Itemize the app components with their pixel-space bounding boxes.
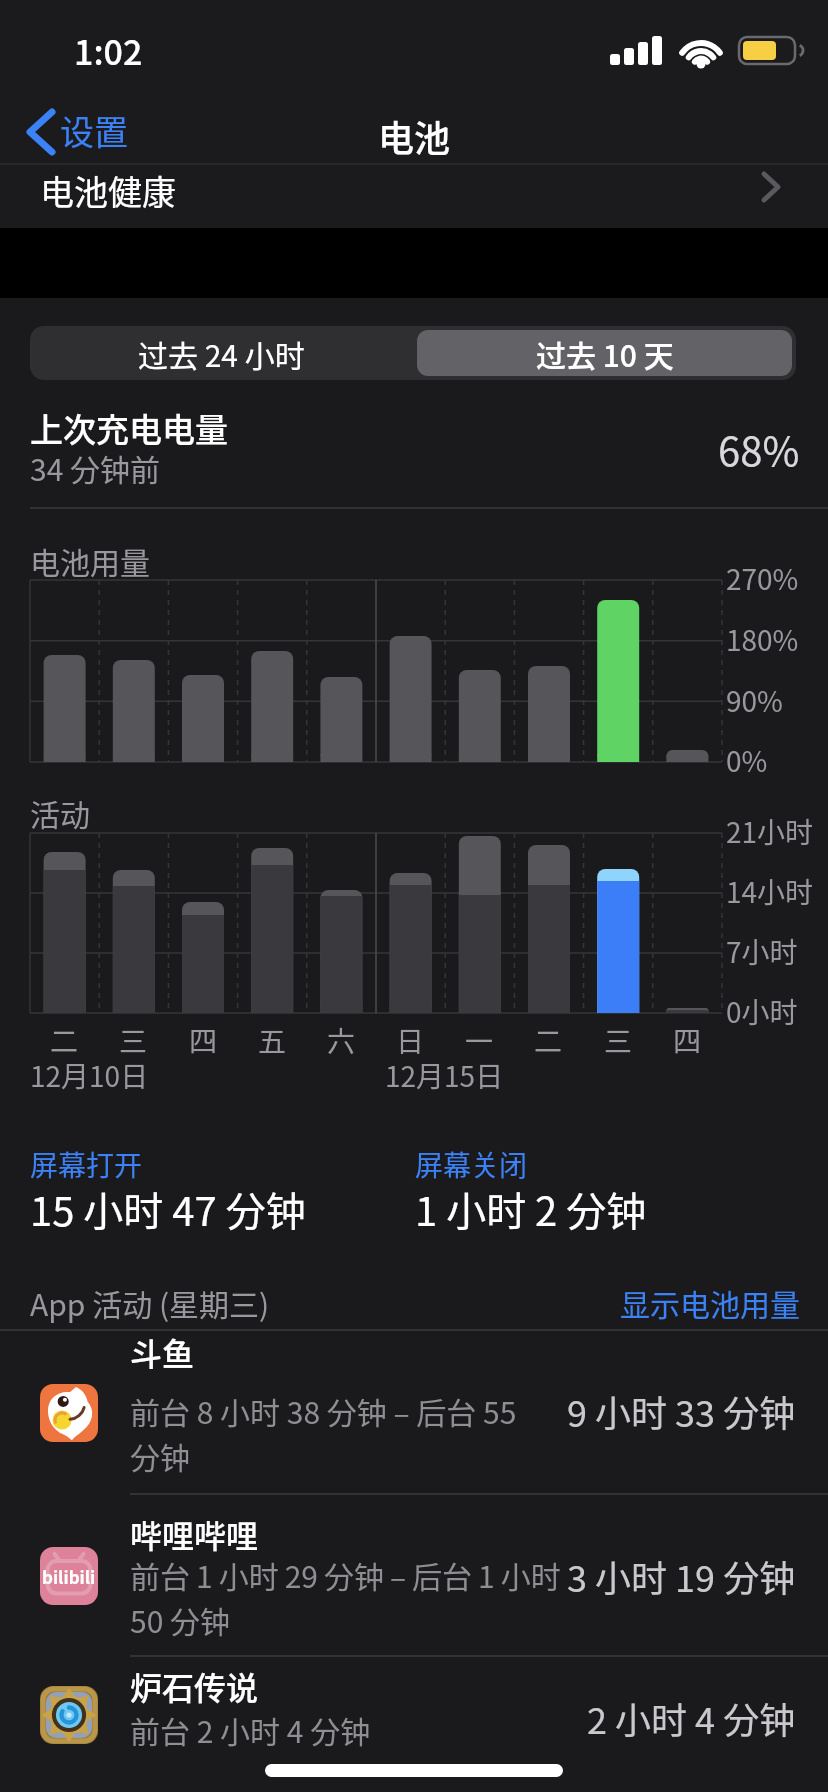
staticText: 前台 1 小时 29 分钟 – 后台 1 小时 xyxy=(130,1553,561,1596)
staticText: 上次充电电量 xyxy=(30,404,228,452)
staticText: 14小时 xyxy=(726,871,814,912)
staticText: 21小时 xyxy=(726,811,814,852)
staticText: 哔哩哔哩 xyxy=(130,1511,259,1557)
staticText: 斗鱼 xyxy=(130,1329,195,1375)
staticText: 12月10日 xyxy=(30,1055,149,1096)
staticText: 2 小时 4 分钟 xyxy=(587,1692,796,1744)
staticText: 电池 xyxy=(378,110,451,162)
button[interactable]: 过去 24 小时 xyxy=(30,326,413,380)
staticText: 显示电池用量 xyxy=(620,1281,800,1324)
staticText: 1 小时 2 分钟 xyxy=(415,1180,647,1238)
button[interactable]: 炉石传说 xyxy=(0,1656,828,1792)
staticText: 50 分钟 xyxy=(130,1598,231,1641)
staticText: 炉石传说 xyxy=(130,1663,259,1709)
staticText: 六 xyxy=(327,1020,356,1061)
staticText: App 活动 (星期三) xyxy=(30,1281,270,1324)
button[interactable]: 哔哩哔哩 xyxy=(0,1494,828,1656)
button[interactable]: 过去 10 天 xyxy=(417,330,792,376)
staticText: 34 分钟前 xyxy=(30,446,161,489)
staticText: 二 xyxy=(50,1020,79,1061)
staticText: 屏幕关闭 xyxy=(415,1144,528,1185)
staticText: 日 xyxy=(396,1020,425,1061)
staticText: 过去 24 小时 xyxy=(138,332,305,375)
staticText: 9 小时 33 分钟 xyxy=(567,1385,796,1437)
staticText: 活动 xyxy=(30,791,90,834)
staticText: 270% xyxy=(726,558,799,599)
staticText: bilibili xyxy=(42,1564,96,1589)
staticText: 一 xyxy=(465,1020,494,1061)
button[interactable]: 斗鱼 xyxy=(0,1331,828,1494)
staticText: 电池用量 xyxy=(30,539,150,582)
button[interactable]: 设置 xyxy=(22,100,152,160)
staticText: 0小时 xyxy=(726,991,798,1032)
staticText: 设置 xyxy=(60,106,128,155)
staticText: 7小时 xyxy=(726,931,798,972)
staticText: 过去 10 天 xyxy=(536,332,674,375)
staticText: 分钟 xyxy=(130,1434,190,1477)
staticText: 三 xyxy=(604,1020,633,1061)
staticText: 前台 2 小时 4 分钟 xyxy=(130,1708,371,1751)
button[interactable]: 显示电池用量 xyxy=(560,1278,810,1322)
staticText: 前台 8 小时 38 分钟 – 后台 55 xyxy=(130,1389,517,1432)
staticText: 四 xyxy=(189,1020,218,1061)
staticText: 15 小时 47 分钟 xyxy=(30,1180,306,1238)
staticText: 四 xyxy=(673,1020,702,1061)
staticText: 三 xyxy=(119,1020,148,1061)
staticText: 1:02 xyxy=(74,26,143,75)
staticText: 90% xyxy=(726,680,783,721)
staticText: 180% xyxy=(726,619,799,660)
staticText: 屏幕打开 xyxy=(30,1144,143,1185)
staticText: 二 xyxy=(534,1020,563,1061)
button[interactable]: 电池健康 xyxy=(0,166,828,226)
staticText: 电池健康 xyxy=(40,166,176,215)
staticText: 五 xyxy=(258,1020,287,1061)
staticText: 68% xyxy=(718,420,800,478)
staticText: 12月15日 xyxy=(385,1055,504,1096)
staticText: 0% xyxy=(726,740,768,781)
staticText: 3 小时 19 分钟 xyxy=(567,1550,796,1602)
